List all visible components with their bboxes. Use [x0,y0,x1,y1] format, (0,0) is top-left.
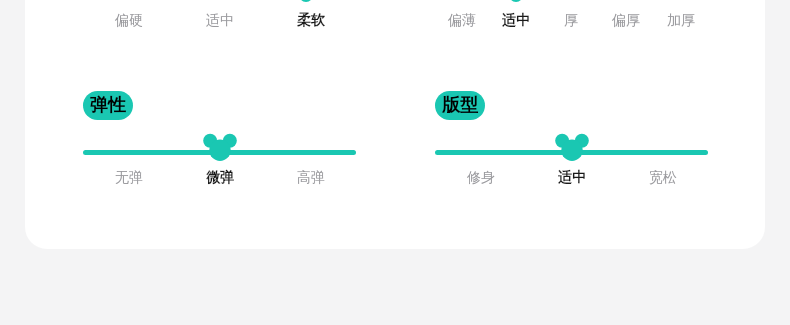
button[interactable]: 无弹 [115,169,143,187]
button[interactable]: 偏薄 [448,12,476,30]
button[interactable]: 偏硬 [115,12,143,30]
button[interactable]: 高弹 [297,169,325,187]
staticText: 弹性 [90,94,126,117]
button[interactable]: Slider [83,129,356,165]
button[interactable]: 适中 [558,169,586,187]
button[interactable]: 修身 [467,169,495,187]
button[interactable]: 加厚 [667,12,695,30]
button[interactable]: 适中 [206,12,234,30]
staticText: 版型 [442,94,478,117]
button[interactable]: 偏厚 [612,12,640,30]
button[interactable]: 微弹 [206,169,234,187]
button[interactable]: 弹性 [83,91,133,120]
button[interactable]: Slider [435,129,708,165]
button[interactable]: 宽松 [649,169,677,187]
button[interactable]: 厚 [564,12,578,30]
button[interactable]: 版型 [435,91,485,120]
button[interactable]: 适中 [502,12,530,30]
button[interactable]: 柔软 [297,12,325,30]
